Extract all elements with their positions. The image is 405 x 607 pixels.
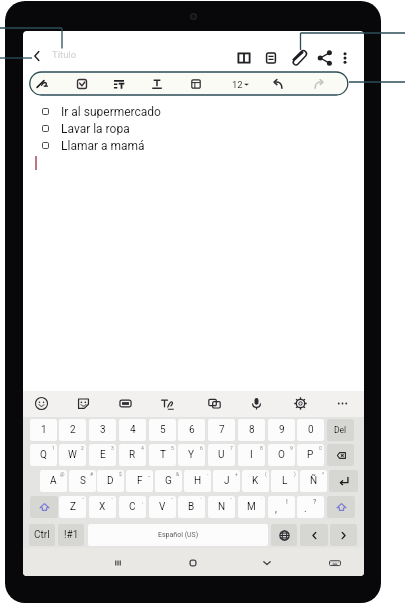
button[interactable]: Backspace: [327, 444, 354, 466]
staticText: H: [194, 475, 202, 487]
button[interactable]: 5: [149, 419, 176, 441]
button[interactable]: Checklist: [75, 77, 89, 91]
button[interactable]: Reader view: [234, 48, 254, 68]
button[interactable]: D: [97, 470, 124, 492]
button[interactable]: Home: [185, 555, 201, 571]
button[interactable]: Llamar a mamá: [42, 139, 242, 152]
button[interactable]: A: [40, 470, 67, 492]
staticText: 5: [171, 445, 174, 451]
staticText: J: [224, 475, 230, 487]
button[interactable]: 2: [59, 419, 86, 441]
button[interactable]: Ir al supermercado: [42, 105, 242, 118]
button[interactable]: 12: [232, 77, 249, 91]
button[interactable]: Z: [59, 496, 86, 518]
button[interactable]: Alignment: [112, 77, 126, 91]
button[interactable]: GIF: [118, 396, 133, 411]
button[interactable]: Note list: [261, 48, 281, 68]
button[interactable]: C: [119, 496, 146, 518]
button[interactable]: Undo: [271, 77, 285, 91]
button[interactable]: Título: [52, 49, 77, 60]
button[interactable]: More options: [335, 48, 355, 68]
staticText: W: [68, 449, 77, 461]
button[interactable]: Shift: [327, 496, 355, 518]
button[interactable]: Enter: [329, 470, 358, 492]
staticText: R: [129, 449, 136, 461]
staticText: Q: [40, 449, 47, 461]
button[interactable]: G: [155, 470, 182, 492]
button[interactable]: Keyboard layout: [327, 555, 343, 571]
button[interactable]: O: [268, 444, 295, 466]
button[interactable]: Text style: [150, 77, 164, 91]
staticText: B: [188, 501, 195, 513]
button[interactable]: Del: [327, 419, 354, 441]
button[interactable]: J: [213, 470, 240, 492]
button[interactable]: Español (US): [88, 524, 268, 546]
button[interactable]: Lavar la ropa: [42, 122, 242, 135]
button[interactable]: S: [69, 470, 96, 492]
button[interactable]: Stickers: [76, 396, 91, 411]
button[interactable]: 4: [119, 419, 146, 441]
button[interactable]: N: [208, 496, 235, 518]
button[interactable]: Hide keyboard: [259, 555, 275, 571]
button[interactable]: Attach: [288, 48, 308, 68]
button[interactable]: Change language: [271, 524, 297, 546]
button[interactable]: 3: [89, 419, 116, 441]
button[interactable]: Shift: [30, 496, 58, 518]
button[interactable]: F: [126, 470, 153, 492]
button[interactable]: L: [271, 470, 298, 492]
button[interactable]: Insert table: [189, 77, 203, 91]
button[interactable]: Pen: [35, 76, 50, 91]
button[interactable]: M: [238, 496, 265, 518]
button[interactable]: Y: [178, 444, 205, 466]
button[interactable]: T: [149, 444, 176, 466]
button[interactable]: V: [149, 496, 176, 518]
button[interactable]: Previous: [300, 524, 328, 546]
button[interactable]: Recent apps: [110, 555, 126, 571]
button[interactable]: 6: [178, 419, 205, 441]
button[interactable]: 0: [297, 419, 324, 441]
button[interactable]: Share: [315, 48, 335, 68]
staticText: O: [278, 449, 285, 461]
staticText: 4: [141, 445, 144, 451]
staticText: P: [307, 449, 314, 461]
button[interactable]: Emoji: [34, 396, 49, 411]
button[interactable]: .: [297, 496, 324, 518]
button[interactable]: K: [242, 470, 269, 492]
button[interactable]: Voice input: [249, 396, 264, 411]
button[interactable]: 1: [30, 419, 57, 441]
button[interactable]: Translate: [207, 396, 222, 411]
button[interactable]: ,: [268, 496, 295, 518]
button[interactable]: Back: [26, 45, 48, 67]
button[interactable]: Ñ: [300, 470, 327, 492]
button[interactable]: X: [89, 496, 116, 518]
staticText: 0: [319, 445, 322, 451]
staticText: 3: [111, 445, 114, 451]
staticText: D: [107, 475, 114, 487]
button[interactable]: Q: [30, 444, 57, 466]
button[interactable]: Redo: [312, 77, 326, 91]
button[interactable]: Next: [330, 524, 357, 546]
button[interactable]: Ctrl: [29, 524, 55, 546]
staticText: X: [99, 501, 106, 513]
button[interactable]: More: [335, 396, 350, 411]
staticText: $: [119, 471, 122, 477]
button[interactable]: E: [89, 444, 116, 466]
button[interactable]: 8: [238, 419, 265, 441]
button[interactable]: Keyboard settings: [293, 396, 308, 411]
button[interactable]: U: [208, 444, 235, 466]
button[interactable]: W: [59, 444, 86, 466]
button[interactable]: !#1: [58, 524, 84, 546]
button[interactable]: H: [184, 470, 211, 492]
button[interactable]: I: [238, 444, 265, 466]
staticText: ˙: [261, 497, 263, 503]
button[interactable]: R: [119, 444, 146, 466]
button[interactable]: Handwriting: [160, 396, 175, 411]
staticText: .: [304, 503, 307, 515]
button[interactable]: P: [297, 444, 324, 466]
staticText: Ir al supermercado: [61, 105, 161, 118]
button[interactable]: 9: [268, 419, 295, 441]
button[interactable]: B: [178, 496, 205, 518]
button[interactable]: 7: [208, 419, 235, 441]
staticText: (: [265, 471, 267, 477]
staticText: 1: [41, 424, 47, 436]
